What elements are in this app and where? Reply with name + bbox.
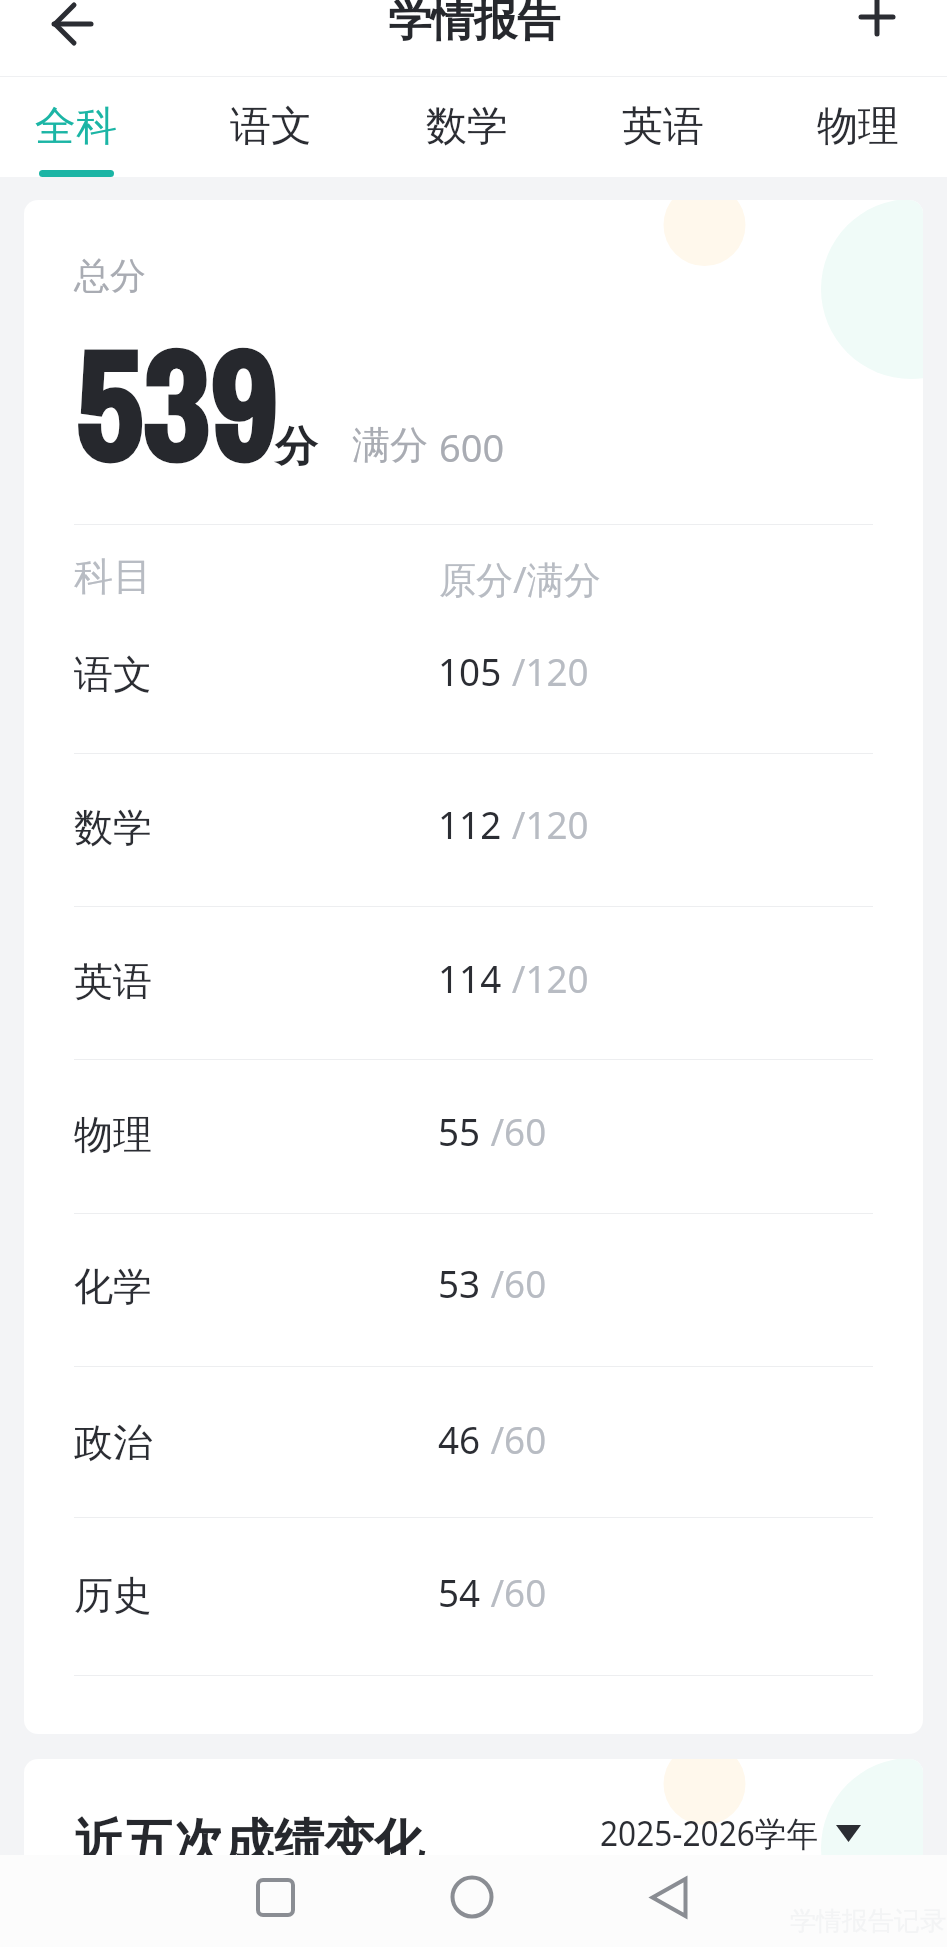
button[interactable]: 语文 xyxy=(176,77,366,177)
button[interactable]: 全科 xyxy=(0,77,171,177)
staticText: 114 xyxy=(438,952,502,1004)
button[interactable]: 2025-2026学年 xyxy=(600,1810,861,1856)
button[interactable]: Add xyxy=(849,0,905,70)
staticText: 600 xyxy=(439,421,505,473)
staticText: /120 xyxy=(512,798,589,850)
staticText: 物理 xyxy=(74,1110,152,1159)
staticText: 科目 xyxy=(74,552,152,601)
staticText: 46 xyxy=(438,1413,481,1465)
button[interactable]: 物理 xyxy=(24,1069,923,1209)
staticText: 学情报告记录 xyxy=(790,1905,946,1938)
staticText: /60 xyxy=(490,1257,547,1309)
button[interactable]: 数学 xyxy=(24,762,923,902)
staticText: 英语 xyxy=(74,957,152,1006)
button[interactable]: 英语 xyxy=(568,77,758,177)
staticText: /60 xyxy=(490,1105,547,1157)
staticText: 满分 xyxy=(352,421,428,469)
staticText: 语文 xyxy=(230,101,312,153)
staticText: 近五次成绩变化 xyxy=(74,1812,424,1875)
button[interactable]: 数学 xyxy=(372,77,562,177)
staticText: 539 xyxy=(76,298,278,508)
staticText: 分 xyxy=(275,421,317,474)
button[interactable]: 物理 xyxy=(763,77,947,177)
staticText: 物理 xyxy=(817,101,899,153)
button[interactable]: 语文 xyxy=(24,609,923,749)
staticText: 化学 xyxy=(74,1262,152,1311)
staticText: 学情报告 xyxy=(388,0,560,48)
staticText: 53 xyxy=(438,1257,481,1309)
staticText: 55 xyxy=(438,1105,481,1157)
staticText: 历史 xyxy=(74,1571,152,1620)
staticText: 全科 xyxy=(35,101,117,153)
staticText: /60 xyxy=(490,1413,547,1465)
staticText: 2025-2026学年 xyxy=(600,1810,818,1856)
staticText: 语文 xyxy=(74,650,152,699)
button[interactable]: Back xyxy=(623,1851,715,1943)
button[interactable]: 历史 xyxy=(24,1530,923,1670)
staticText: 54 xyxy=(438,1566,481,1618)
staticText: /120 xyxy=(512,952,589,1004)
button[interactable]: Recents xyxy=(229,1851,321,1943)
staticText: 原分/满分 xyxy=(439,553,601,604)
button[interactable]: 英语 xyxy=(24,916,923,1056)
staticText: 105 xyxy=(438,645,502,697)
staticText: 英语 xyxy=(622,101,704,153)
button[interactable]: 化学 xyxy=(24,1221,923,1361)
staticText: 数学 xyxy=(74,803,152,852)
button[interactable]: 政治 xyxy=(24,1377,923,1517)
button[interactable]: Back xyxy=(24,0,84,77)
staticText: /120 xyxy=(512,645,589,697)
staticText: 112 xyxy=(438,798,502,850)
staticText: 政治 xyxy=(74,1418,152,1467)
staticText: 总分 xyxy=(74,253,146,298)
button[interactable]: Home xyxy=(426,1851,518,1943)
staticText: /60 xyxy=(490,1566,547,1618)
staticText: 数学 xyxy=(426,101,508,153)
